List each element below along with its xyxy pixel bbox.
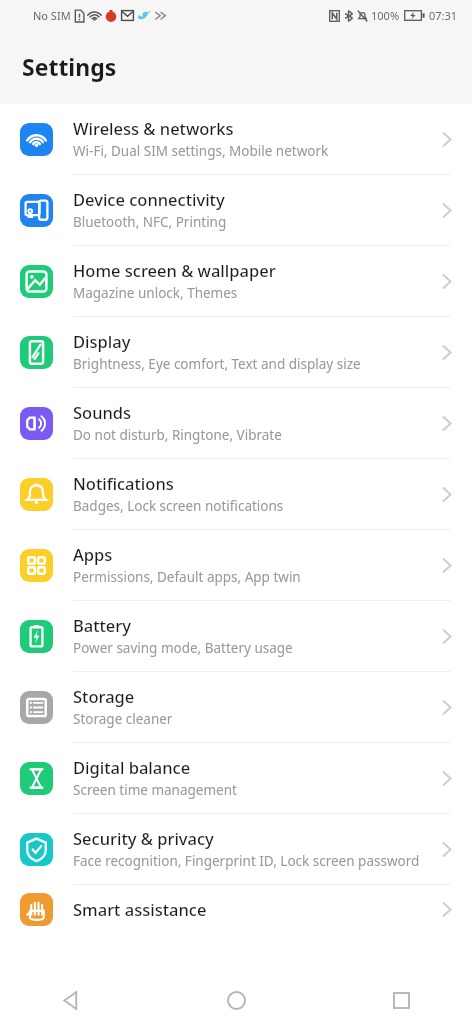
staticText: 100%: [371, 8, 400, 23]
staticText: Device connectivity: [73, 188, 225, 210]
staticText: Power saving mode, Battery usage: [73, 639, 293, 657]
staticText: Apps: [73, 543, 113, 565]
staticText: No SIM: [33, 8, 71, 23]
button[interactable]: Apps: [0, 530, 472, 600]
button[interactable]: Recent apps: [356, 977, 446, 1024]
button[interactable]: Home screen & wallpaper: [0, 246, 472, 316]
staticText: Home screen & wallpaper: [73, 259, 276, 281]
staticText: Face recognition, Fingerprint ID, Lock s…: [73, 852, 420, 870]
staticText: Display: [73, 330, 131, 352]
staticText: Do not disturb, Ringtone, Vibrate: [73, 426, 282, 444]
staticText: Digital balance: [73, 756, 191, 778]
button[interactable]: Storage: [0, 672, 472, 742]
staticText: 07:31: [429, 8, 458, 23]
staticText: Battery: [73, 614, 132, 636]
staticText: Settings: [22, 51, 117, 82]
button[interactable]: Notifications: [0, 459, 472, 529]
button[interactable]: Display: [0, 317, 472, 387]
staticText: Security & privacy: [73, 827, 214, 849]
staticText: Wireless & networks: [73, 117, 234, 139]
staticText: Brightness, Eye comfort, Text and displa…: [73, 355, 361, 373]
button[interactable]: Battery: [0, 601, 472, 671]
button[interactable]: Wireless & networks: [0, 104, 472, 174]
button[interactable]: Sounds: [0, 388, 472, 458]
staticText: Permissions, Default apps, App twin: [73, 568, 301, 586]
button[interactable]: Security & privacy: [0, 814, 472, 884]
button[interactable]: Device connectivity: [0, 175, 472, 245]
staticText: Sounds: [73, 401, 132, 423]
button[interactable]: Smart assistance: [0, 885, 472, 934]
staticText: Magazine unlock, Themes: [73, 284, 238, 302]
button[interactable]: Digital balance: [0, 743, 472, 813]
button[interactable]: Back: [26, 977, 116, 1024]
button[interactable]: Home: [191, 977, 281, 1024]
staticText: Storage cleaner: [73, 710, 173, 728]
staticText: Screen time management: [73, 781, 237, 799]
staticText: Storage: [73, 685, 135, 707]
staticText: Notifications: [73, 472, 174, 494]
staticText: Bluetooth, NFC, Printing: [73, 213, 227, 231]
staticText: Badges, Lock screen notifications: [73, 497, 284, 515]
staticText: Smart assistance: [73, 898, 207, 920]
staticText: Wi-Fi, Dual SIM settings, Mobile network: [73, 142, 329, 160]
